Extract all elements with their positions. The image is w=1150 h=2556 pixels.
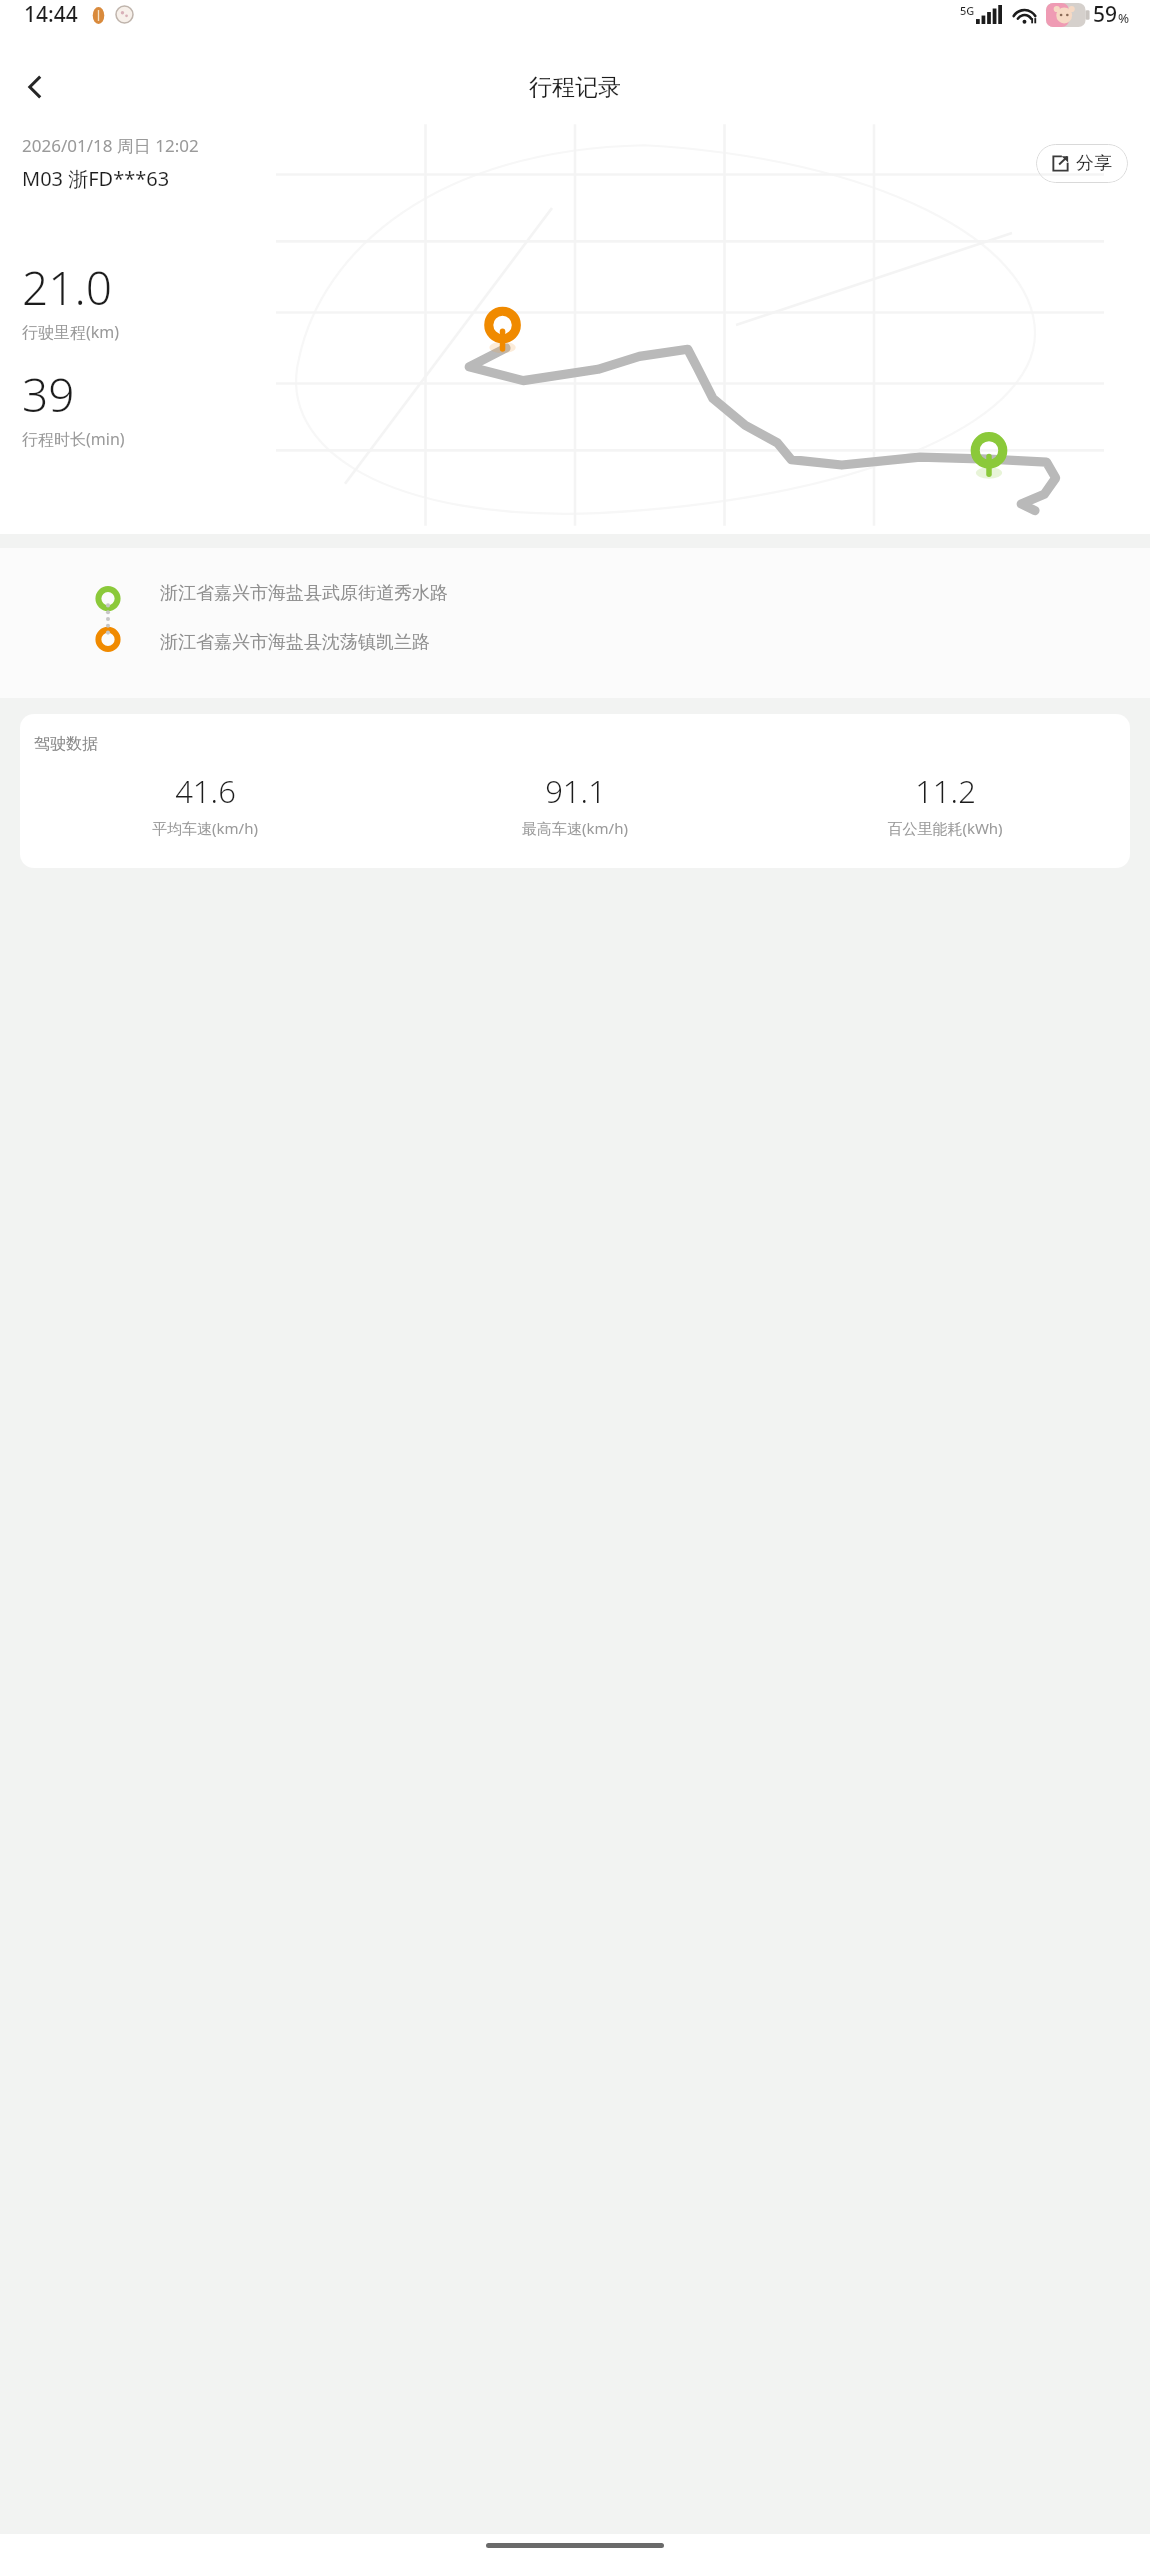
staticText: 39: [22, 363, 75, 426]
staticText: 91.1: [545, 770, 606, 812]
staticText: 11.2: [915, 770, 976, 812]
staticText: 行程记录: [529, 73, 621, 102]
staticText: 59: [1093, 0, 1118, 29]
staticText: 驾驶数据: [34, 734, 98, 754]
staticText: M03 浙FD***63: [22, 165, 170, 192]
button[interactable]: 分享: [1036, 144, 1128, 183]
staticText: 21.0: [22, 256, 113, 319]
staticText: 浙江省嘉兴市海盐县沈荡镇凯兰路: [160, 631, 430, 654]
staticText: 行驶里程(km): [22, 321, 120, 343]
staticText: 2026/01/18 周日 12:02: [22, 134, 199, 157]
staticText: 5G: [960, 3, 975, 18]
staticText: 分享: [1076, 152, 1112, 175]
staticText: 浙江省嘉兴市海盐县武原街道秀水路: [160, 582, 448, 605]
staticText: 41.6: [175, 770, 236, 812]
staticText: 行程时长(min): [22, 428, 125, 450]
staticText: 14:44: [24, 0, 78, 29]
staticText: 平均车速(km/h): [152, 818, 258, 838]
staticText: 百公里能耗(kWh): [887, 818, 1003, 838]
button[interactable]: Back: [8, 60, 62, 114]
staticText: %: [1118, 9, 1130, 27]
staticText: 最高车速(km/h): [522, 818, 628, 838]
